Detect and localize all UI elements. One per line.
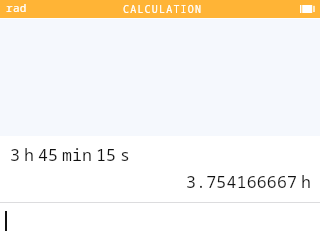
staticText: h bbox=[301, 170, 311, 193]
button[interactable]: 3 bbox=[0, 136, 320, 202]
staticText: 3 bbox=[10, 143, 20, 166]
staticText: min bbox=[62, 143, 92, 166]
staticText: 45 bbox=[38, 143, 58, 166]
staticText: h bbox=[24, 143, 34, 166]
staticText: rad bbox=[6, 0, 27, 15]
button[interactable]: Expression input bbox=[0, 203, 320, 240]
button[interactable]: rad bbox=[0, 0, 33, 18]
staticText: 15 bbox=[96, 143, 116, 166]
staticText: CALCULATION bbox=[123, 2, 203, 16]
staticText: 3.754166667 bbox=[186, 170, 298, 193]
button[interactable]: Battery status bbox=[305, 0, 320, 18]
staticText: s bbox=[120, 143, 130, 166]
